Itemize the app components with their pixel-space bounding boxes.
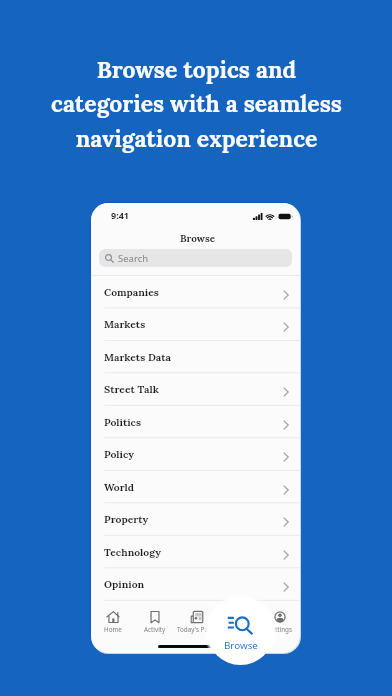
button[interactable]: Markets <box>91 308 300 339</box>
button[interactable]: Activity <box>134 606 176 636</box>
button[interactable]: Politics <box>91 406 300 437</box>
staticText: World <box>104 481 135 494</box>
staticText: Street Talk <box>104 383 159 396</box>
button[interactable]: Technology <box>91 536 300 567</box>
staticText: Companies <box>104 286 159 299</box>
button[interactable]: Street Talk <box>91 373 300 404</box>
button[interactable]: Policy <box>91 438 300 469</box>
staticText: Today's Paper <box>177 625 218 634</box>
button[interactable]: Property <box>91 503 300 534</box>
staticText: 9:41 <box>111 209 129 221</box>
button[interactable]: Markets Data <box>91 341 300 372</box>
staticText: Search <box>118 252 149 265</box>
staticText: Opinion <box>104 578 145 591</box>
button[interactable]: World <box>91 471 300 502</box>
staticText: Settings <box>268 625 292 634</box>
staticText: Markets Data <box>104 351 171 364</box>
staticText: Browse <box>224 639 258 652</box>
button[interactable]: Browse <box>207 598 274 665</box>
staticText: Home <box>104 625 122 634</box>
button[interactable]: Home <box>92 606 134 636</box>
staticText: Technology <box>104 546 162 559</box>
staticText: Markets <box>104 318 146 331</box>
button[interactable]: Settings <box>259 606 300 636</box>
staticText: Browse <box>228 625 250 634</box>
staticText: Browse <box>180 232 216 244</box>
staticText: Browse topics and categories with a seam… <box>51 55 342 154</box>
button[interactable]: Search <box>99 249 292 267</box>
staticText: Policy <box>104 448 135 461</box>
staticText: Property <box>104 513 149 526</box>
button[interactable]: Opinion <box>91 568 300 599</box>
staticText: Activity <box>144 625 166 634</box>
button[interactable]: Browse <box>218 606 260 636</box>
staticText: Politics <box>104 416 142 429</box>
button[interactable]: Companies <box>91 276 300 307</box>
button[interactable]: Today's Paper <box>176 606 218 636</box>
